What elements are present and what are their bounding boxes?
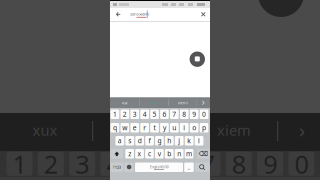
button[interactable]: Back xyxy=(0,0,320,180)
staticText: xu xyxy=(152,100,156,105)
button[interactable]: 0 xyxy=(0,0,320,180)
staticText: h xyxy=(167,136,171,145)
button[interactable]: l xyxy=(0,0,320,180)
button[interactable]: 8 xyxy=(0,0,320,180)
button[interactable]: Stop recording xyxy=(0,0,320,180)
button[interactable]: m xyxy=(0,0,320,180)
button[interactable]: 9 xyxy=(0,0,320,180)
button[interactable]: Backspace xyxy=(0,0,320,180)
staticText: 6 xyxy=(162,110,166,119)
button[interactable]: More suggestions xyxy=(0,0,320,180)
button[interactable]: p xyxy=(0,0,320,180)
staticText: v xyxy=(158,149,161,158)
staticText: 3 xyxy=(75,147,89,180)
staticText: 2 xyxy=(44,147,58,180)
button[interactable]: Search xyxy=(0,0,320,180)
staticText: xiemi xyxy=(178,100,188,105)
button[interactable]: j xyxy=(0,0,320,180)
staticText: 4 xyxy=(106,147,120,180)
button[interactable]: 1 xyxy=(0,0,320,180)
button[interactable]: Clear xyxy=(0,0,320,180)
button[interactable]: Space xyxy=(0,0,320,180)
staticText: o xyxy=(192,123,196,132)
staticText: j xyxy=(178,136,180,145)
staticText: 8 xyxy=(182,110,186,119)
button[interactable]: xu xyxy=(0,0,320,180)
staticText: 7 xyxy=(172,110,176,119)
button[interactable]: 3 xyxy=(0,0,320,180)
button[interactable]: 2 xyxy=(0,0,320,180)
button[interactable]: 7 xyxy=(0,0,320,180)
staticText: d xyxy=(138,136,142,145)
staticText: 0 xyxy=(202,110,206,119)
staticText: 7 xyxy=(200,147,214,180)
button[interactable]: g xyxy=(0,0,320,180)
staticText: 9 xyxy=(192,110,196,119)
button[interactable]: xux xyxy=(0,0,320,180)
button[interactable]: v xyxy=(0,0,320,180)
staticText: xiem xyxy=(217,120,251,140)
staticText: ⌫ xyxy=(199,150,208,158)
button[interactable]: o xyxy=(0,0,320,180)
button[interactable]: r xyxy=(0,0,320,180)
staticText: 8 xyxy=(232,147,246,180)
staticText: u xyxy=(172,123,176,132)
button[interactable]: d xyxy=(0,0,320,180)
button[interactable]: y xyxy=(0,0,320,180)
staticText: q xyxy=(113,123,117,132)
staticText: c xyxy=(148,149,151,158)
button[interactable]: c xyxy=(0,0,320,180)
button[interactable]: h xyxy=(0,0,320,180)
staticText: z xyxy=(128,149,131,158)
staticText: 4 xyxy=(143,110,147,119)
button[interactable]: ?123 xyxy=(0,0,320,180)
staticText: y xyxy=(163,123,166,132)
button[interactable]: w xyxy=(0,0,320,180)
button[interactable]: n xyxy=(0,0,320,180)
staticText: 5 xyxy=(138,147,152,180)
staticText: l xyxy=(198,136,200,145)
staticText: x xyxy=(137,149,141,158)
button[interactable]: u xyxy=(0,0,320,180)
staticText: g xyxy=(157,136,161,145)
button[interactable]: q xyxy=(0,0,320,180)
button[interactable]: Emoji xyxy=(0,0,320,180)
staticText: p xyxy=(202,123,206,132)
button[interactable]: . xyxy=(0,0,320,180)
button[interactable]: f xyxy=(0,0,320,180)
staticText: 1 xyxy=(113,110,117,119)
staticText: n xyxy=(177,149,181,158)
staticText: 0 xyxy=(294,147,308,180)
button[interactable]: s xyxy=(0,0,320,180)
staticText: s xyxy=(128,136,131,145)
button[interactable]: k xyxy=(0,0,320,180)
staticText: 2 xyxy=(123,110,127,119)
button[interactable]: t xyxy=(0,0,320,180)
staticText: English(UK) xyxy=(149,164,168,169)
staticText: xux xyxy=(121,100,127,105)
button[interactable]: 5 xyxy=(0,0,320,180)
button[interactable]: z xyxy=(0,0,320,180)
staticText: t xyxy=(153,123,155,132)
staticText: 9 xyxy=(263,147,277,180)
staticText: e xyxy=(133,123,137,132)
button[interactable]: Shift xyxy=(0,0,320,180)
staticText: 1 xyxy=(12,147,26,180)
button[interactable]: a xyxy=(0,0,320,180)
button[interactable]: 6 xyxy=(0,0,320,180)
button[interactable]: xiemi xyxy=(0,0,320,180)
staticText: w xyxy=(122,123,127,132)
button[interactable]: 4 xyxy=(0,0,320,180)
staticText: i xyxy=(183,123,185,132)
staticText: zero xiemi xyxy=(130,11,149,17)
staticText: ?123 xyxy=(113,165,121,170)
staticText: f xyxy=(148,136,150,145)
staticText: . xyxy=(188,163,190,172)
staticText: k xyxy=(187,136,191,145)
staticText: › xyxy=(299,117,305,143)
button[interactable]: b xyxy=(0,0,320,180)
button[interactable]: i xyxy=(0,0,320,180)
button[interactable]: x xyxy=(0,0,320,180)
staticText: a xyxy=(118,136,122,145)
button[interactable]: e xyxy=(0,0,320,180)
